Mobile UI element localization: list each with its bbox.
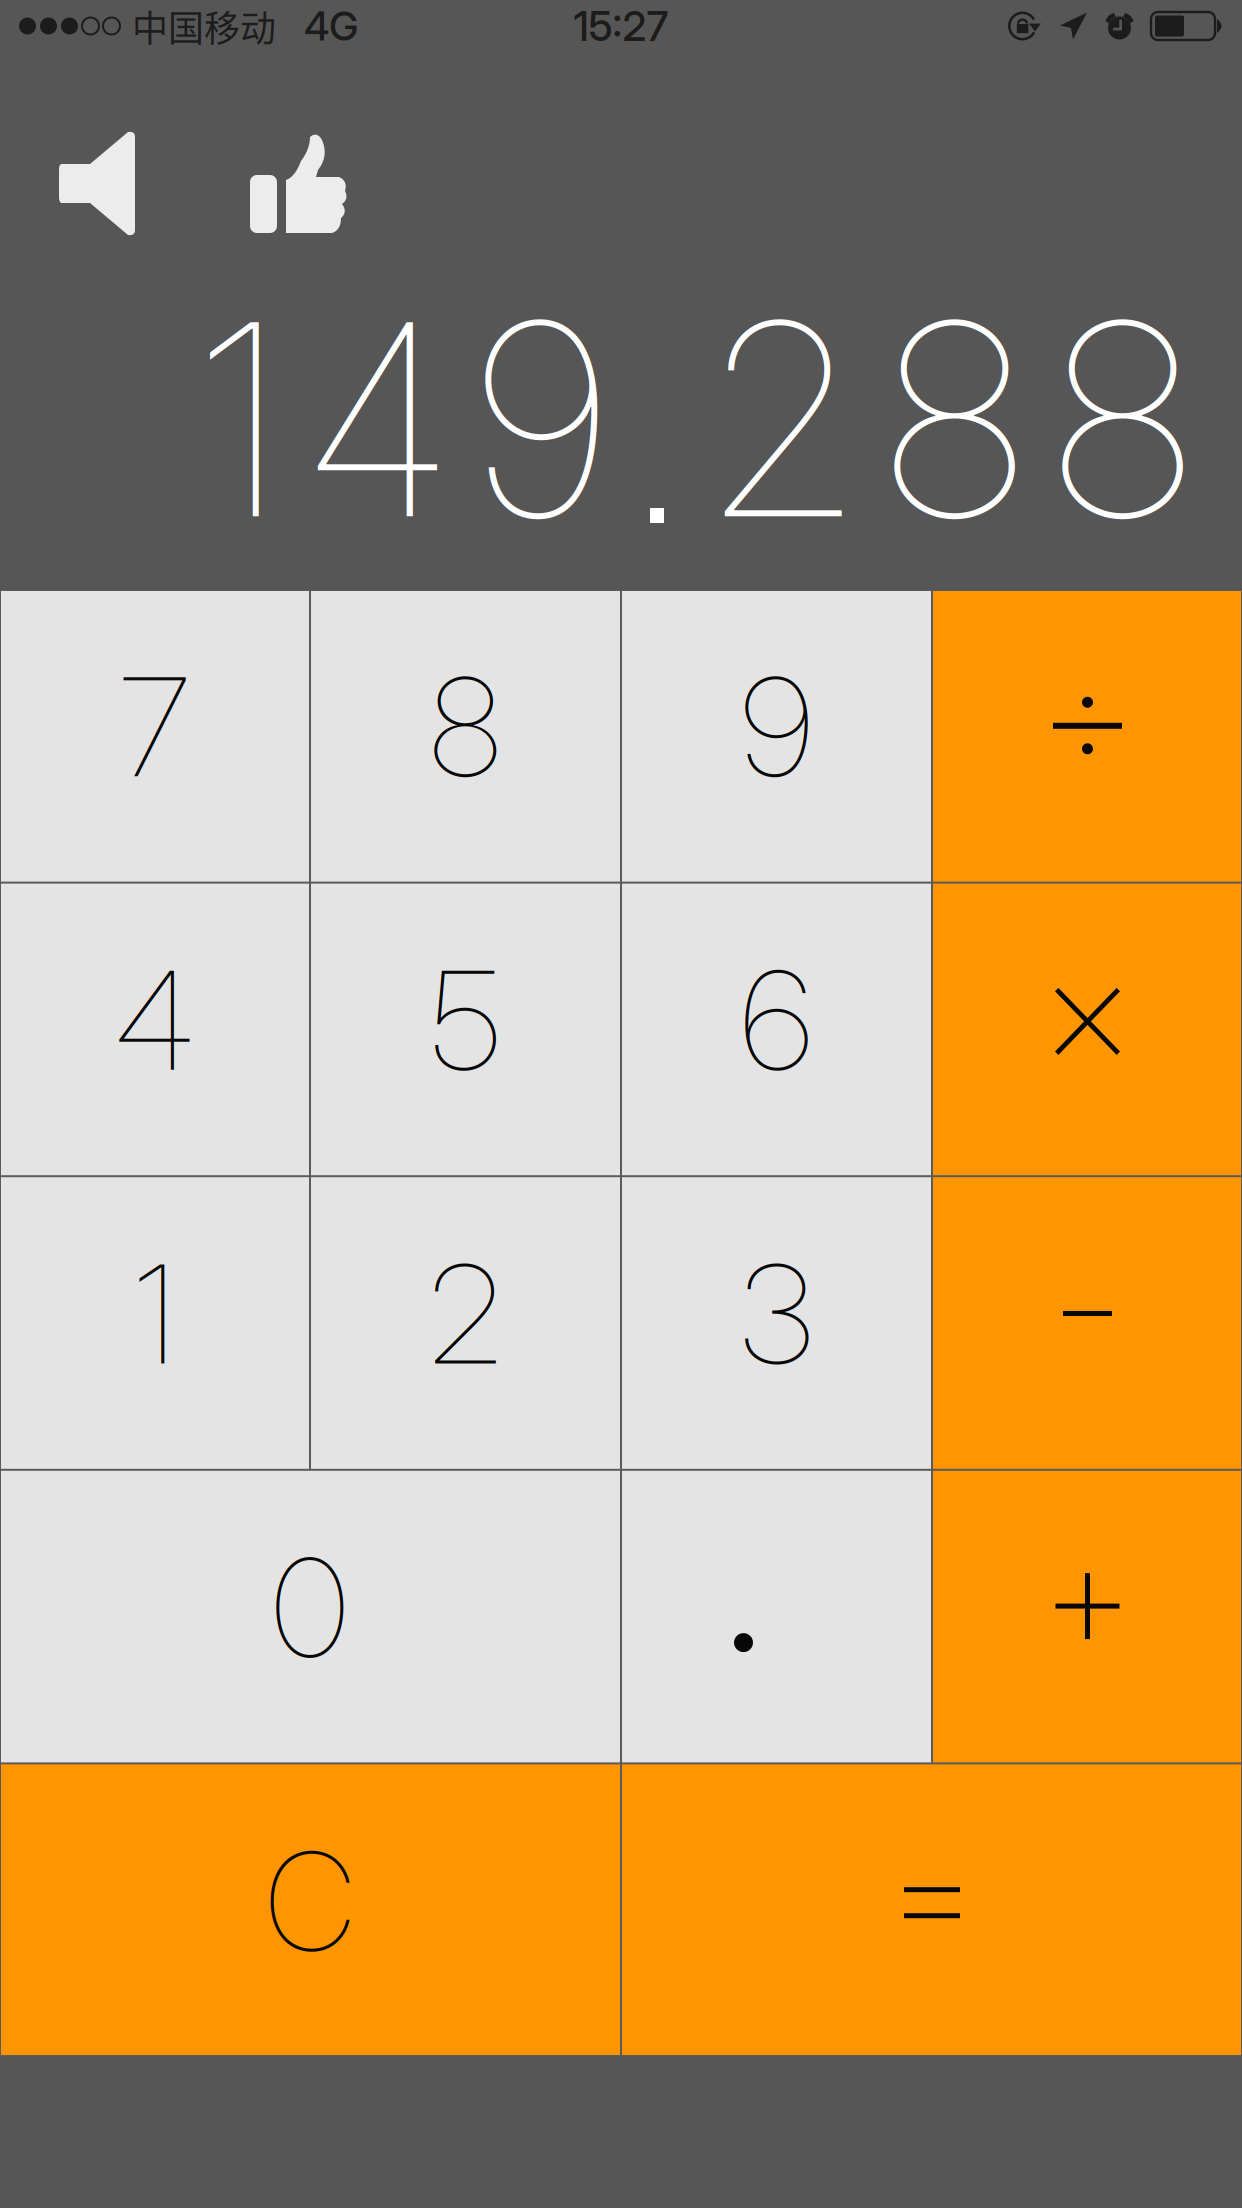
button[interactable]: 4 — [0, 884, 309, 1175]
staticText: C — [265, 1819, 355, 1983]
staticText: 7 — [119, 644, 189, 809]
button[interactable]: Divide — [933, 590, 1242, 882]
staticText: 6 — [741, 938, 812, 1103]
button[interactable]: Decimal point — [622, 1471, 931, 1762]
staticText: 1 — [134, 1232, 175, 1396]
button[interactable]: Equals — [622, 1764, 1242, 2056]
button[interactable]: 2 — [311, 1177, 620, 1469]
staticText: 2 — [429, 1232, 502, 1396]
button[interactable]: 8 — [311, 590, 620, 882]
button[interactable]: 9 — [622, 590, 931, 882]
button[interactable]: Sound — [59, 131, 135, 236]
button[interactable]: Like — [250, 134, 346, 233]
staticText: 中国移动 — [132, 0, 276, 52]
staticText: 8 — [430, 644, 501, 809]
button[interactable]: Subtract — [933, 1177, 1242, 1469]
staticText: 5 — [431, 938, 500, 1103]
staticText: 4 — [115, 938, 194, 1103]
staticText: 0 — [272, 1525, 348, 1690]
button[interactable]: 1 — [0, 1177, 309, 1469]
staticText: 149.288 — [191, 258, 1202, 581]
staticText: 4G — [304, 2, 358, 50]
staticText: 3 — [740, 1232, 812, 1396]
button[interactable]: C — [0, 1764, 620, 2056]
button[interactable]: 0 — [0, 1471, 620, 1762]
button[interactable]: Add — [933, 1471, 1242, 1762]
button[interactable]: Multiply — [933, 884, 1242, 1175]
button[interactable]: 3 — [622, 1177, 931, 1469]
staticText: 15:27 — [573, 1, 668, 51]
button[interactable]: 5 — [311, 884, 620, 1175]
button[interactable]: 6 — [622, 884, 931, 1175]
staticText: 9 — [741, 644, 812, 809]
button[interactable]: 7 — [0, 590, 309, 882]
